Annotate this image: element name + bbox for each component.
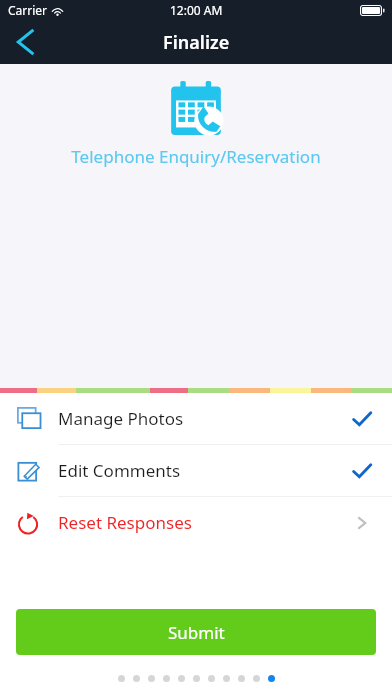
button[interactable]: Page 4: [159, 671, 174, 686]
button[interactable]: Page 5: [174, 671, 189, 686]
button[interactable]: Page 7: [204, 671, 219, 686]
button[interactable]: Page 9: [234, 671, 249, 686]
button[interactable]: Page 10: [249, 671, 264, 686]
button[interactable]: Page 11: [264, 671, 279, 686]
staticText: 12:00 AM: [170, 2, 223, 18]
staticText: Edit Comments: [58, 459, 350, 482]
button[interactable]: Manage Photos: [0, 393, 392, 444]
button[interactable]: Page 6: [189, 671, 204, 686]
button[interactable]: Page 2: [129, 671, 144, 686]
button[interactable]: Back: [0, 20, 50, 64]
staticText: Submit: [168, 621, 225, 644]
staticText: Finalize: [163, 30, 230, 55]
button[interactable]: Reset Responses: [0, 497, 392, 548]
staticText: Carrier: [8, 2, 48, 18]
button[interactable]: Page 8: [219, 671, 234, 686]
button[interactable]: Telephone Enquiry/Reservation: [0, 145, 392, 168]
button[interactable]: Telephone Enquiry/Reservation: [167, 79, 225, 137]
staticText: Manage Photos: [58, 407, 350, 430]
button[interactable]: Page 1: [114, 671, 129, 686]
button[interactable]: Page 3: [144, 671, 159, 686]
button[interactable]: Edit Comments: [0, 445, 392, 496]
staticText: Reset Responses: [58, 511, 350, 534]
button[interactable]: Submit: [16, 609, 376, 655]
